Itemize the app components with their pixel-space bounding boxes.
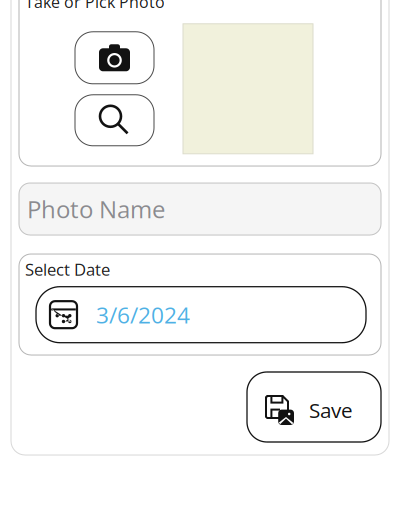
staticText: 3/6/2024: [96, 299, 190, 330]
staticText: Photo Name: [27, 193, 165, 225]
button[interactable]: Save: [247, 372, 381, 442]
staticText: Take or Pick Photo: [25, 0, 165, 13]
button[interactable]: Pick Photo: [75, 95, 154, 146]
button[interactable]: 3/6/2024: [36, 287, 366, 343]
button[interactable]: Take Photo: [75, 32, 154, 84]
staticText: Select Date: [25, 258, 110, 281]
staticText: Save: [309, 396, 353, 424]
